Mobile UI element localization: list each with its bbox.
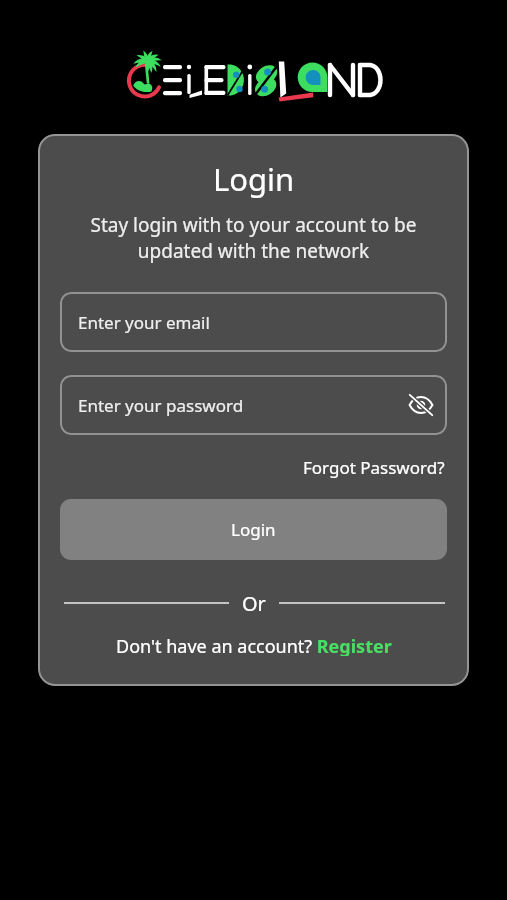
button[interactable]: Forgot Password?: [301, 448, 447, 486]
button[interactable]: Enter your email: [60, 292, 447, 352]
staticText: Enter your password: [78, 394, 244, 417]
staticText: Enter your email: [78, 311, 210, 334]
staticText: Forgot Password?: [303, 456, 445, 478]
button[interactable]: Enter your password: [60, 375, 447, 435]
button[interactable]: Don't have an account? Register: [112, 626, 396, 664]
staticText: Don't have an account? Register: [116, 634, 392, 656]
button[interactable]: Show password: [404, 388, 438, 422]
staticText: Login: [231, 518, 276, 541]
staticText: Login: [213, 158, 295, 200]
staticText: Stay login with to your account to be up…: [58, 212, 449, 264]
button[interactable]: Login: [60, 499, 447, 560]
staticText: Or: [242, 590, 266, 616]
